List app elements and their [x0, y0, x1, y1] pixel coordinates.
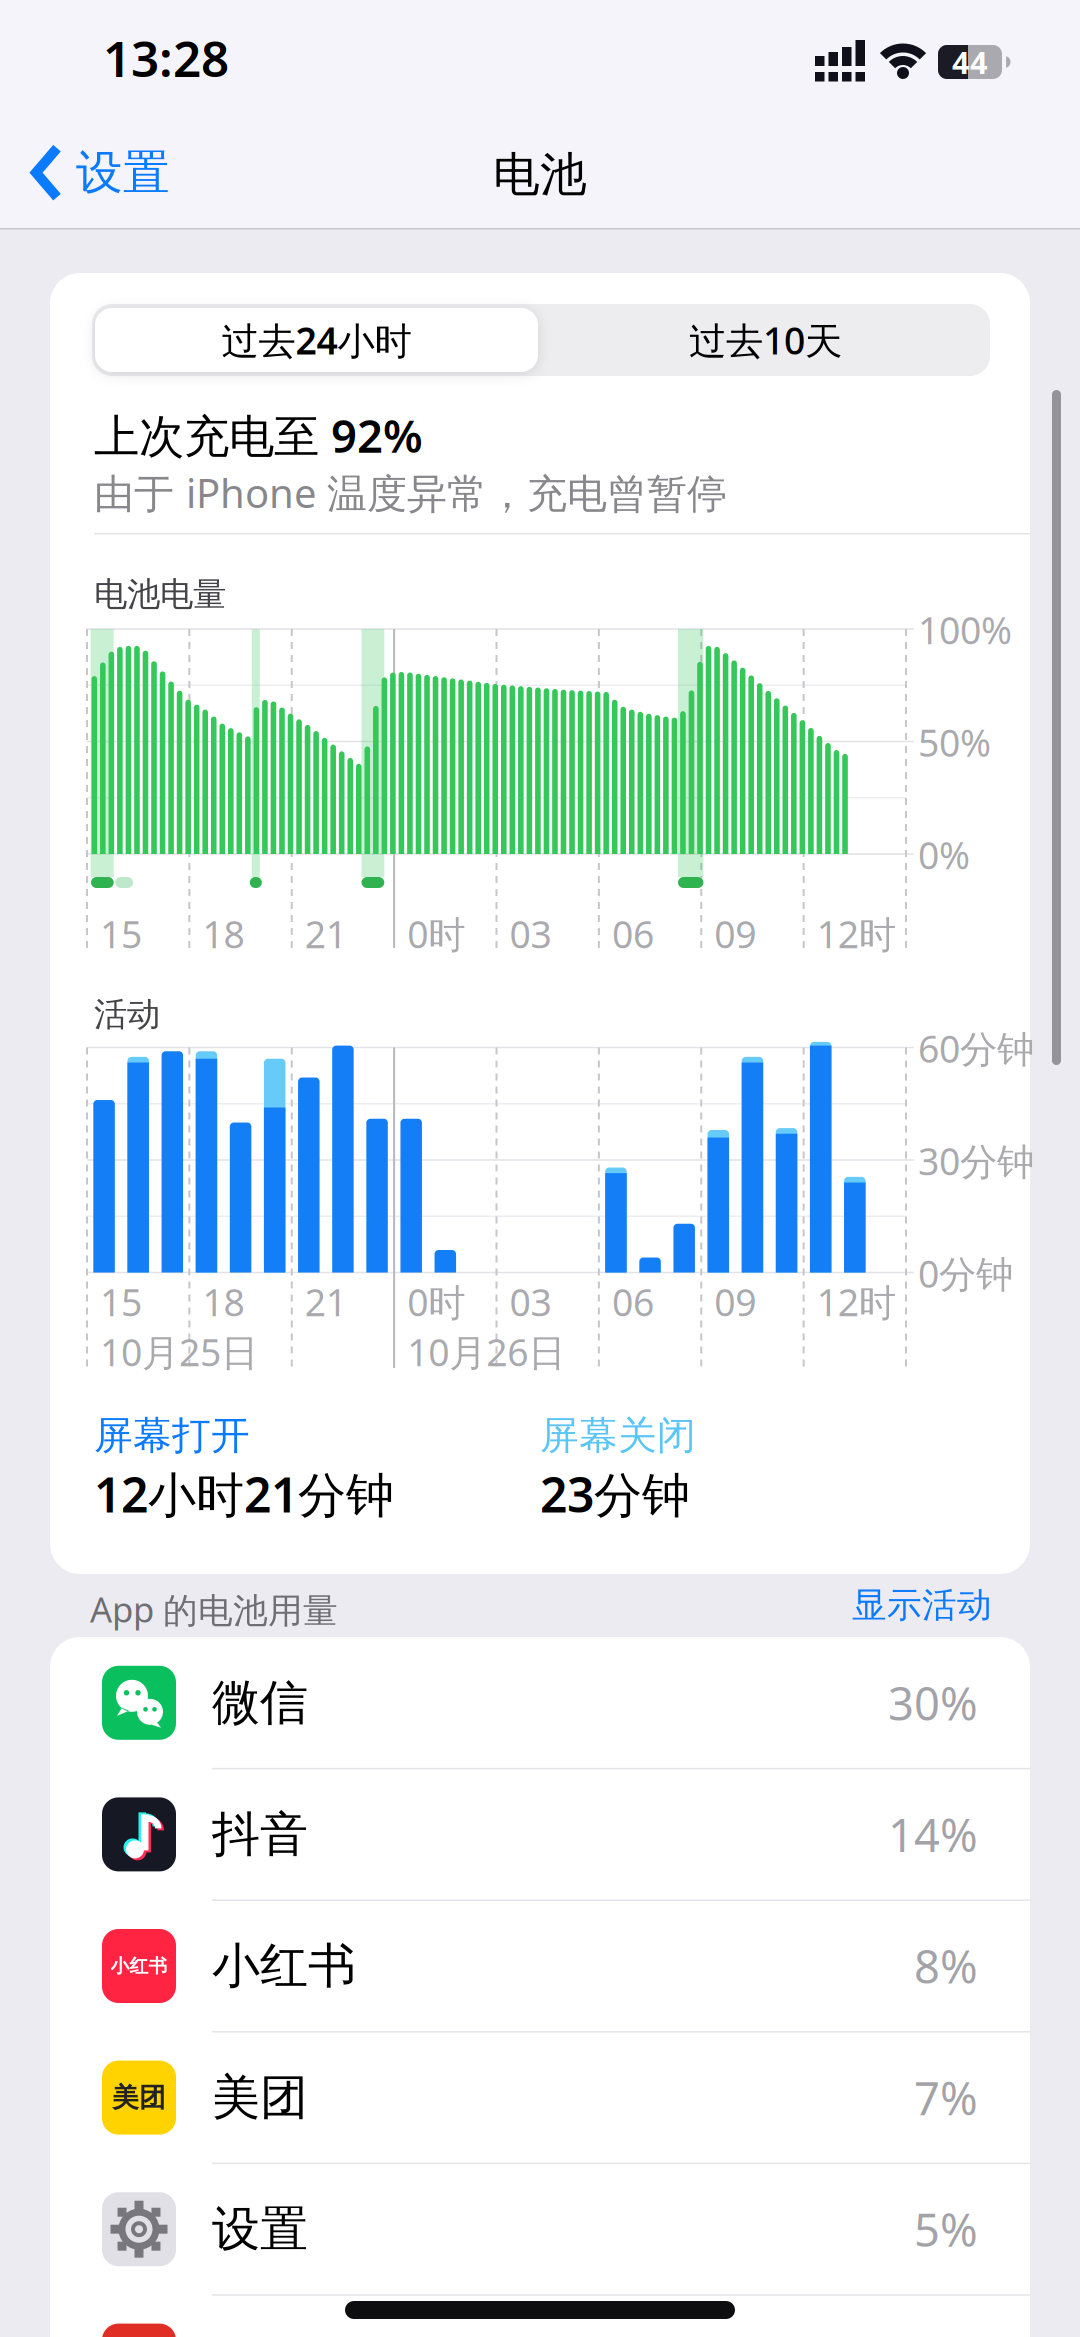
staticText: 100% — [918, 605, 1012, 655]
staticText: 显示活动 — [852, 1584, 992, 1627]
staticText: 活动 — [94, 994, 160, 1035]
button[interactable]: 抖音 — [50, 1769, 1030, 1900]
staticText: 微信 — [212, 1673, 308, 1732]
staticText: 03 — [509, 1277, 551, 1327]
staticText: 14% — [888, 1804, 978, 1864]
staticText: 18 — [202, 909, 244, 959]
staticText: 过去24小时 — [221, 315, 411, 365]
staticText: 屏幕关闭 — [540, 1412, 696, 1459]
button[interactable]: 返回设置 — [31, 144, 170, 201]
staticText: 13:28 — [103, 25, 229, 90]
staticText: 0% — [918, 830, 970, 880]
staticText: 10月25日 — [100, 1327, 258, 1377]
staticText: 18 — [202, 1277, 244, 1327]
staticText: 小红书 — [110, 1954, 167, 1977]
staticText: 设置 — [76, 144, 170, 201]
staticText: 0分钟 — [918, 1248, 1013, 1298]
staticText: 09 — [714, 1277, 756, 1327]
staticText: 21 — [305, 1277, 347, 1327]
staticText: 设置 — [212, 2200, 308, 2259]
staticText: 50% — [918, 717, 991, 767]
button[interactable]: 过去24小时 — [95, 308, 538, 372]
staticText: 09 — [714, 909, 756, 959]
staticText: 30分钟 — [918, 1136, 1034, 1186]
staticText: 小红书 — [212, 1936, 356, 1995]
staticText: 上次充电至 92% — [94, 405, 423, 465]
staticText: 12时 — [817, 1277, 896, 1327]
button[interactable]: 显示活动 — [852, 1584, 992, 1627]
staticText: 过去10天 — [689, 315, 842, 365]
staticText: 美团 — [112, 2081, 166, 2114]
staticText: 7% — [914, 2067, 978, 2128]
staticText: 60分钟 — [918, 1023, 1034, 1073]
staticText: 03 — [509, 909, 551, 959]
staticText: 44 — [952, 42, 988, 82]
button[interactable]: 微信 — [50, 1637, 1030, 1769]
staticText: 10月26日 — [407, 1327, 565, 1377]
button[interactable]: 设置 — [50, 2163, 1030, 2295]
staticText: 美团 — [212, 2068, 308, 2127]
staticText: 电池电量 — [94, 574, 226, 615]
staticText: 12小时21分钟 — [94, 1462, 394, 1526]
staticText: 30% — [888, 1673, 978, 1733]
staticText: 21 — [305, 909, 347, 959]
staticText: 06 — [612, 1277, 654, 1327]
staticText: 电池 — [493, 146, 587, 203]
staticText: 抖音 — [212, 1805, 308, 1864]
staticText: 0时 — [407, 1277, 465, 1327]
staticText: 15 — [100, 909, 142, 959]
staticText: 由于 iPhone 温度异常，充电曾暂停 — [94, 466, 727, 519]
staticText: 06 — [612, 909, 654, 959]
staticText: 0时 — [407, 909, 465, 959]
staticText: 8% — [914, 1936, 978, 1996]
button[interactable]: 小红书 — [50, 1900, 1030, 2032]
button[interactable]: 过去10天 — [544, 308, 987, 372]
staticText: 12时 — [817, 909, 896, 959]
staticText: 15 — [100, 1277, 142, 1327]
staticText: 屏幕打开 — [94, 1412, 250, 1459]
staticText: App 的电池用量 — [90, 1586, 338, 1632]
staticText: 5% — [914, 2199, 978, 2259]
staticText: 23分钟 — [540, 1462, 690, 1526]
button[interactable]: 美团 — [50, 2032, 1030, 2163]
